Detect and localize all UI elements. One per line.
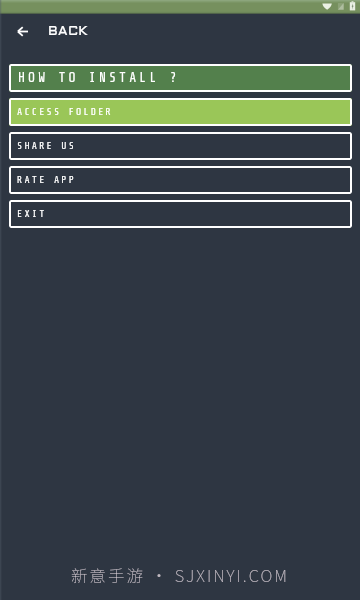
staticText: EXIT: [17, 209, 47, 220]
button[interactable]: Back: [9, 18, 35, 44]
button[interactable]: RATE APP: [9, 166, 352, 194]
staticText: ACCESS FOLDER: [17, 107, 113, 118]
staticText: 新意手游 • SJXINYI.COM: [71, 563, 289, 587]
staticText: RATE APP: [17, 175, 77, 186]
staticText: BACK: [48, 25, 88, 38]
button[interactable]: ACCESS FOLDER: [9, 98, 352, 126]
staticText: SHARE US: [17, 141, 77, 152]
button[interactable]: SHARE US: [9, 132, 352, 160]
button[interactable]: EXIT: [9, 200, 352, 228]
staticText: HOW TO INSTALL ?: [18, 71, 180, 86]
button[interactable]: HOW TO INSTALL ?: [9, 64, 352, 92]
